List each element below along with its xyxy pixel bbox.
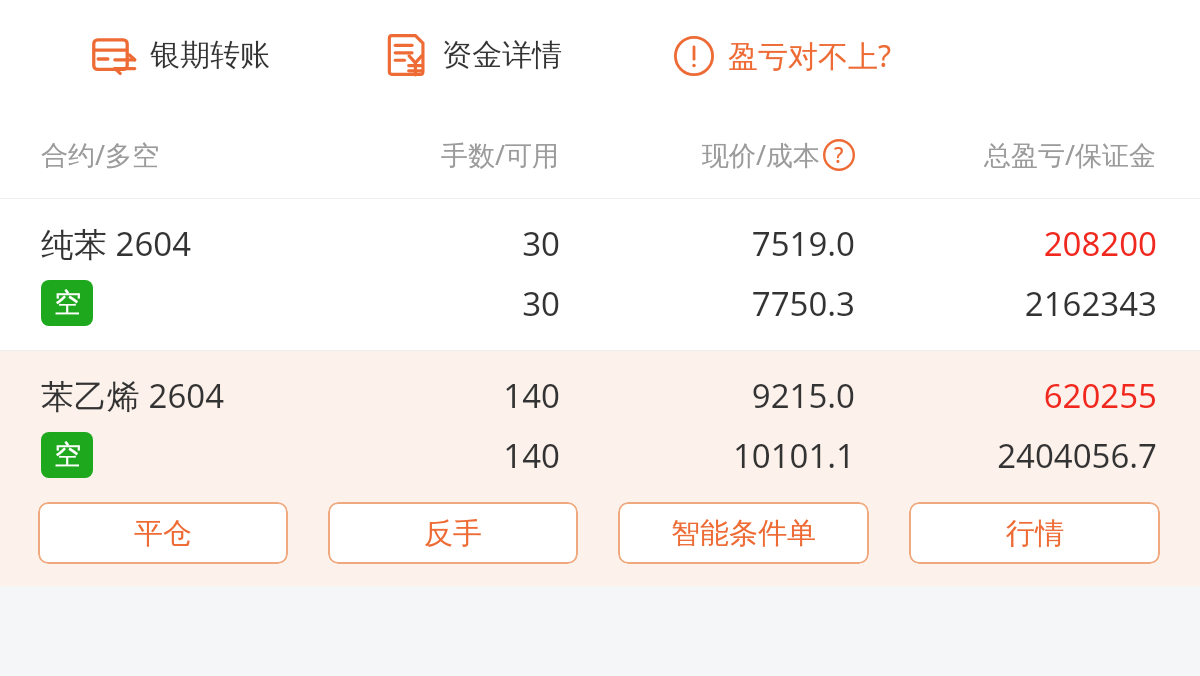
staticText: 苯乙烯 2604	[41, 373, 360, 418]
staticText: 现价/成本	[702, 136, 821, 173]
staticText: 10101.1	[560, 433, 855, 478]
staticText: 30	[360, 221, 560, 266]
button[interactable]: 盈亏对不上?	[670, 29, 896, 82]
staticText: 620255	[855, 373, 1157, 418]
button[interactable]: 银期转账	[88, 29, 274, 81]
button[interactable]: 行情	[909, 502, 1160, 564]
staticText: 总盈亏/保证金	[984, 136, 1157, 173]
staticText: 智能条件单	[671, 515, 816, 552]
staticText: 盈亏对不上?	[728, 35, 892, 76]
staticText: 资金详情	[442, 36, 562, 74]
button[interactable]: 平仓	[38, 502, 288, 564]
staticText: 空	[54, 438, 81, 472]
staticText: 银期转账	[150, 36, 270, 74]
staticText: 30	[360, 281, 560, 326]
staticText: 合约/多空	[41, 136, 360, 173]
staticText: 7519.0	[560, 221, 855, 266]
staticText: 9215.0	[560, 373, 855, 418]
staticText: 2404056.7	[855, 433, 1157, 478]
staticText: 2162343	[855, 281, 1157, 326]
staticText: 反手	[424, 515, 482, 552]
button[interactable]: 资金详情	[382, 27, 566, 83]
staticText: 140	[360, 373, 560, 418]
staticText: 空	[54, 286, 81, 320]
staticText: 行情	[1006, 515, 1064, 552]
button[interactable]: 智能条件单	[618, 502, 869, 564]
staticText: ?	[834, 141, 844, 170]
button[interactable]: 反手	[328, 502, 578, 564]
staticText: 手数/可用	[441, 136, 560, 173]
staticText: 7750.3	[560, 281, 855, 326]
staticText: 平仓	[134, 515, 192, 552]
staticText: 208200	[855, 221, 1157, 266]
staticText: 140	[360, 433, 560, 478]
staticText: 纯苯 2604	[41, 221, 360, 266]
